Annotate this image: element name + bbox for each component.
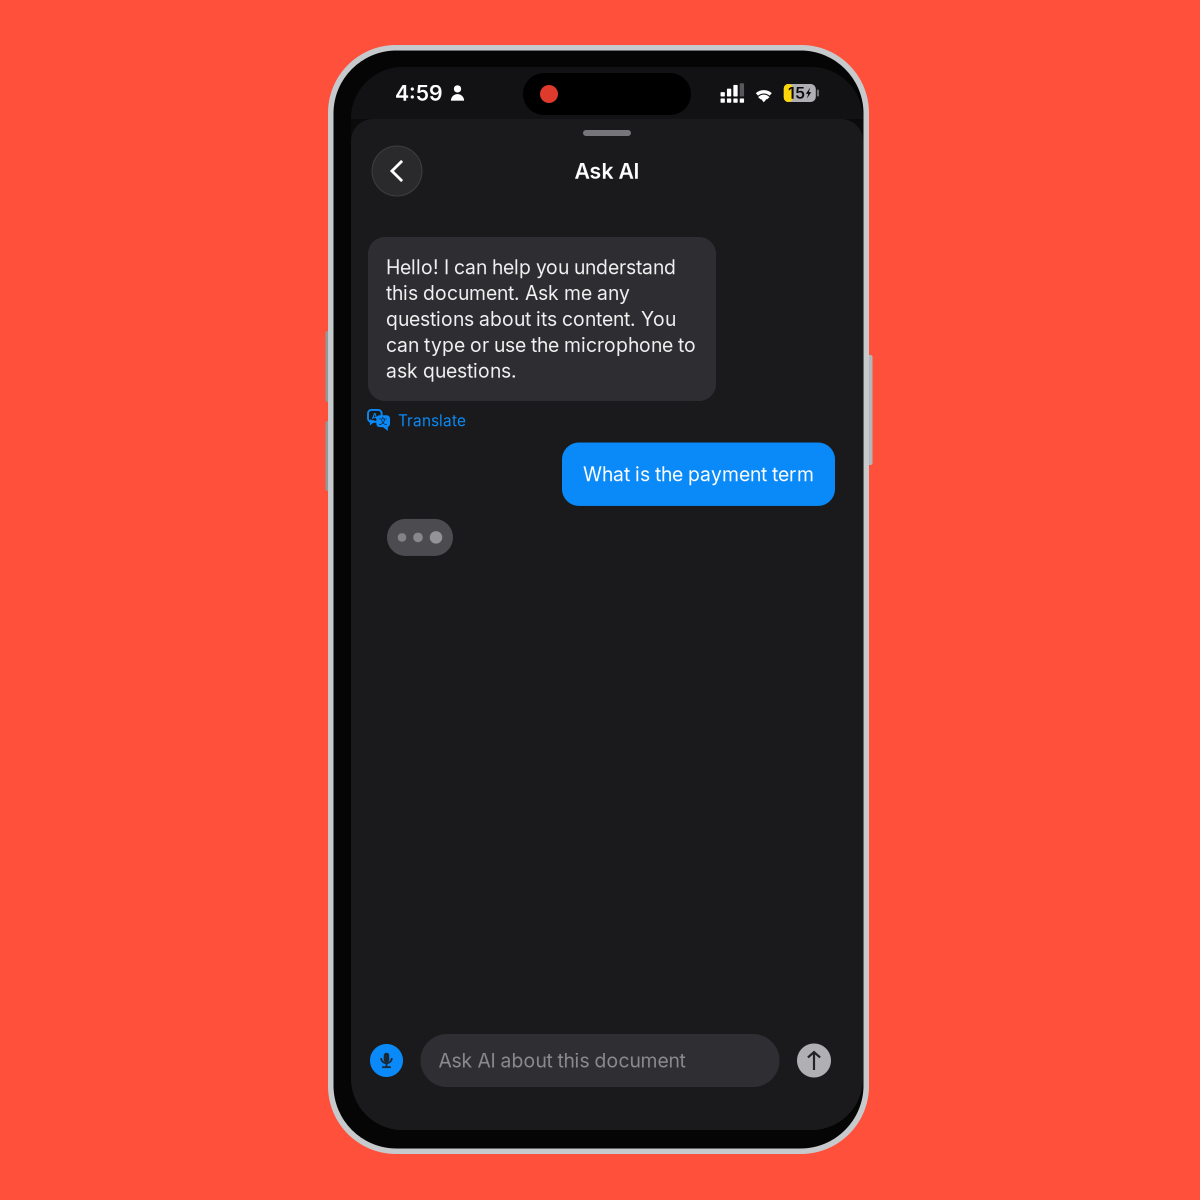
staticText: Ask AI about this document: [438, 1049, 685, 1072]
button[interactable]: Send: [797, 1043, 831, 1077]
staticText: 文: [379, 416, 388, 427]
button[interactable]: A: [368, 401, 472, 441]
staticText: 15: [788, 83, 805, 103]
staticText: Ask AI: [574, 158, 639, 184]
staticText: Hello! I can help you understand this do…: [386, 255, 696, 382]
button[interactable]: Back: [372, 146, 422, 196]
staticText: 4:59: [395, 80, 443, 106]
staticText: Translate: [398, 411, 466, 430]
button[interactable]: Dictate: [370, 1044, 403, 1077]
staticText: What is the payment term: [583, 462, 814, 486]
staticText: A: [372, 411, 378, 421]
